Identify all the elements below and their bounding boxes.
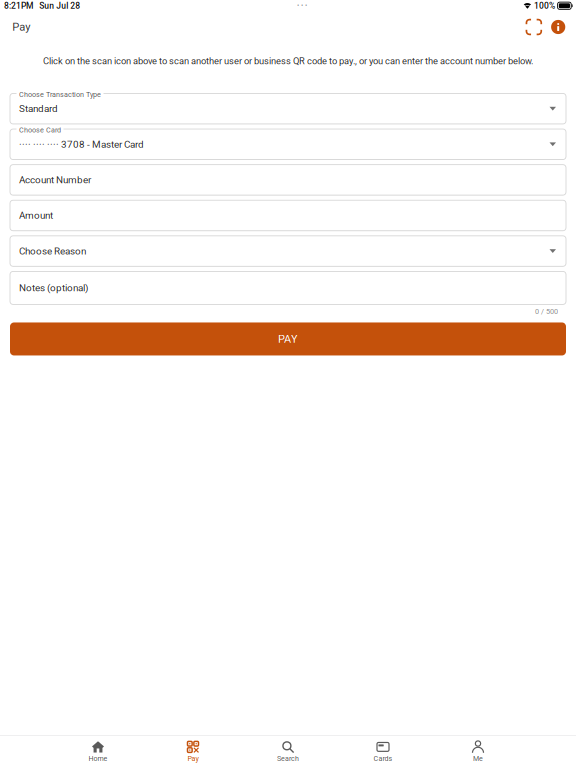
button[interactable]: Pay [145,735,240,768]
staticText: Notes (optional) [19,282,88,294]
staticText: 8:21PM [4,1,33,11]
staticText: Amount [19,210,53,221]
staticText: Home [88,754,107,763]
staticText: ···· ···· ···· 3708 - Master Card [19,138,144,150]
staticText: 0 / 500 [535,307,558,316]
staticText: Choose Reason [19,245,86,257]
button[interactable]: Search [240,735,335,768]
button[interactable]: Me [430,735,525,768]
staticText: Pay [187,754,198,763]
staticText: Sun Jul 28 [39,1,80,11]
staticText: Choose Card [19,126,61,134]
staticText: PAY [278,333,298,345]
button[interactable]: PAY [10,322,566,355]
button[interactable]: Information [547,17,569,37]
button[interactable]: Home [50,735,145,768]
button[interactable]: Scan QR code [521,16,547,38]
staticText: Search [277,754,299,763]
staticText: Choose Transaction Type [19,90,101,99]
staticText: Pay [12,20,30,33]
staticText: • • • [297,2,307,10]
staticText: Standard [19,103,58,114]
staticText: 100% [534,1,555,11]
staticText: Click on the scan icon above to scan ano… [43,55,533,66]
staticText: Me [473,754,483,763]
staticText: Cards [373,754,392,763]
staticText: Account Number [19,174,91,186]
button[interactable]: Cards [335,735,430,768]
